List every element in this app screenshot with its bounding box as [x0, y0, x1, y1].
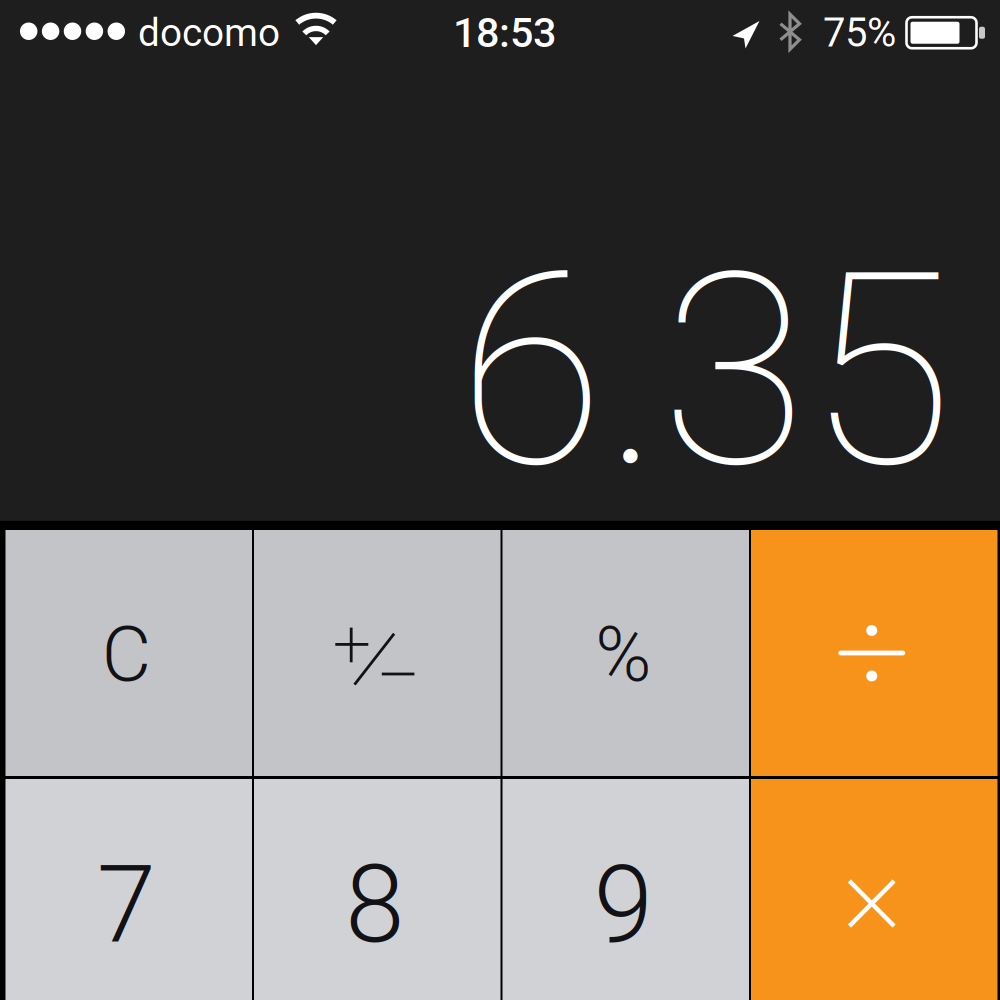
- button[interactable]: %: [502, 530, 749, 776]
- button[interactable]: Divide: [751, 530, 997, 776]
- staticText: 18:53: [453, 8, 556, 57]
- staticText: C: [102, 610, 151, 699]
- staticText: docomo: [138, 10, 280, 55]
- staticText: 6.35: [458, 215, 953, 527]
- staticText: 8: [345, 842, 404, 967]
- staticText: 7: [97, 842, 156, 967]
- staticText: 75%: [823, 9, 896, 56]
- button[interactable]: C: [5, 530, 252, 776]
- button[interactable]: 7: [5, 779, 252, 1000]
- button[interactable]: 9: [502, 779, 749, 1000]
- button[interactable]: 8: [254, 779, 500, 1000]
- button[interactable]: Plus or minus: [254, 530, 500, 776]
- staticText: %: [595, 610, 651, 699]
- button[interactable]: Multiply: [751, 779, 997, 1000]
- staticText: 9: [594, 842, 653, 967]
